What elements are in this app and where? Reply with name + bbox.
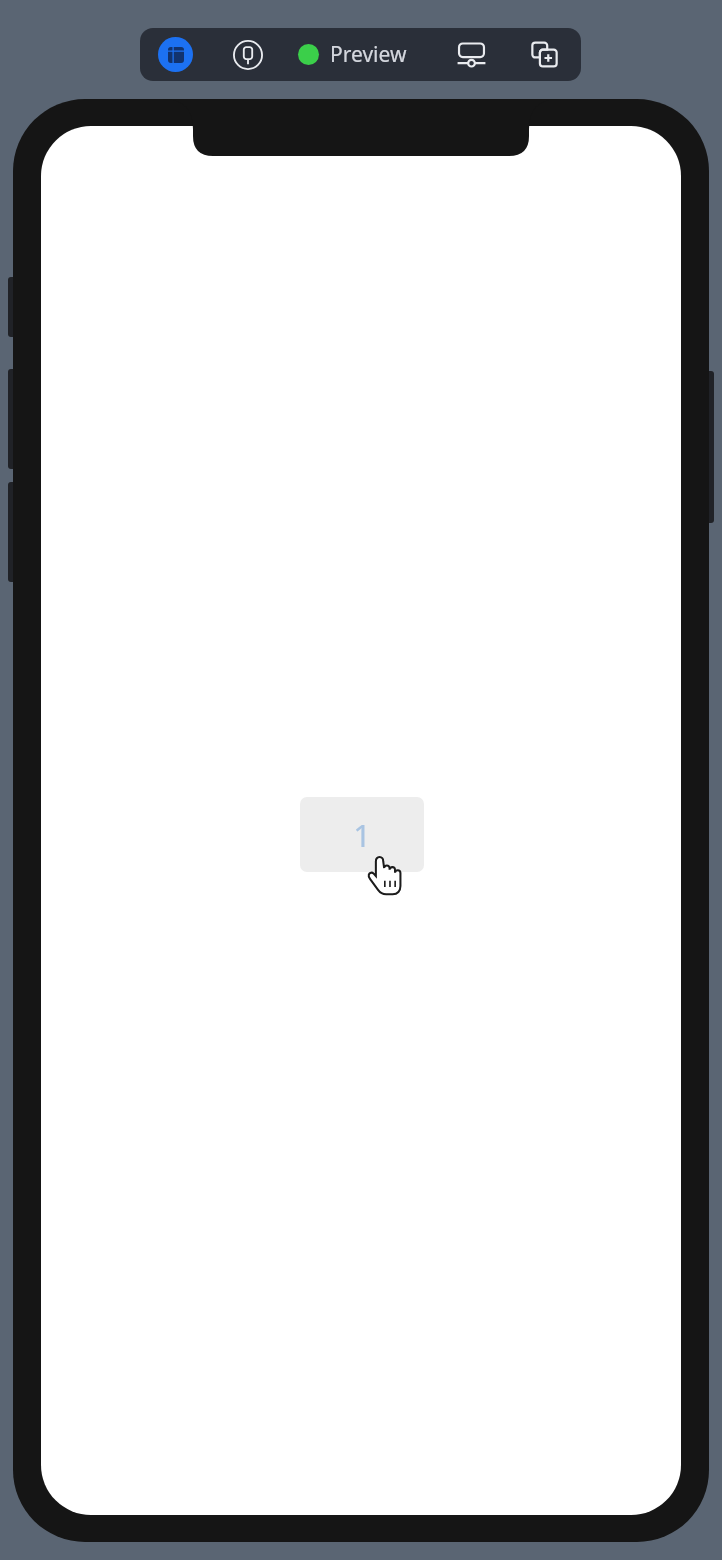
button[interactable]: Zoom controls	[454, 37, 489, 72]
staticText: Preview	[330, 40, 407, 69]
staticText: 1	[353, 814, 371, 856]
button[interactable]: Select device	[230, 37, 265, 72]
button[interactable]: Preview	[298, 38, 407, 71]
button[interactable]: Interactive mode	[158, 37, 193, 72]
button[interactable]: 1	[300, 797, 424, 872]
button[interactable]: Add preview	[527, 37, 562, 72]
